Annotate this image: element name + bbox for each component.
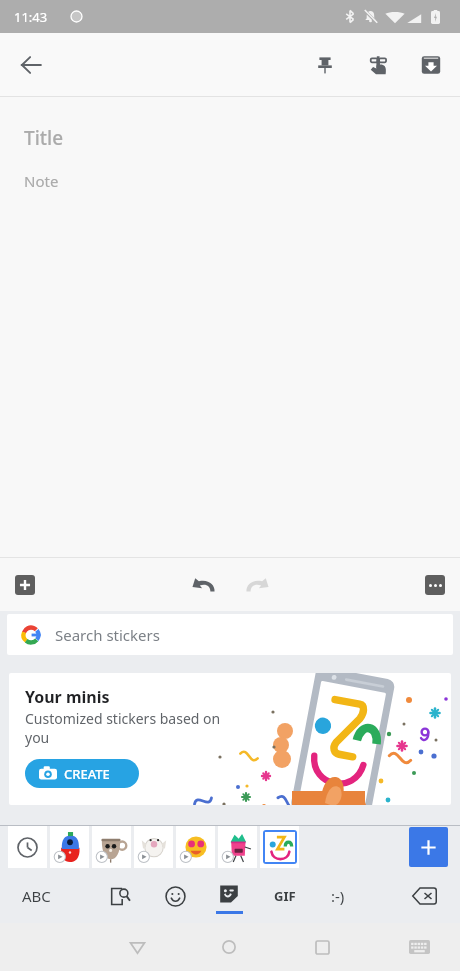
button[interactable]: Search stickers [7, 614, 453, 655]
staticText: :-) [331, 886, 345, 906]
button[interactable]: Home [205, 923, 253, 971]
staticText: ABC [22, 886, 51, 906]
staticText: Your minis [25, 686, 110, 708]
button[interactable]: Archive [409, 43, 453, 87]
button[interactable]: Back [9, 43, 53, 87]
button[interactable]: Your minis [9, 673, 451, 805]
button[interactable]: ABC [8, 874, 64, 918]
button[interactable]: Recent apps [298, 923, 346, 971]
staticText: 11:43 [14, 8, 48, 26]
button[interactable]: Recent stickers [8, 826, 47, 868]
button[interactable]: Add sticker pack [409, 827, 448, 867]
button[interactable]: Reminder [356, 43, 400, 87]
button[interactable]: Stickers [205, 874, 253, 918]
button[interactable]: Sticker pack [134, 826, 173, 868]
button[interactable]: Undo [181, 563, 225, 607]
button[interactable]: Emoji [151, 874, 199, 918]
button[interactable]: Redo [235, 563, 279, 607]
staticText: GIF [274, 887, 296, 905]
button[interactable]: Search stickers [96, 874, 144, 918]
button[interactable]: Backspace [400, 874, 448, 918]
staticText: Customized stickers based on you [25, 709, 221, 747]
button[interactable]: Keyboard [395, 923, 443, 971]
staticText: Note [24, 171, 59, 191]
button[interactable]: Sticker pack [176, 826, 215, 868]
button[interactable]: Sticker pack [218, 826, 257, 868]
button[interactable]: Back [113, 923, 161, 971]
button[interactable]: Add [6, 566, 44, 604]
staticText: Title [24, 125, 64, 151]
button[interactable]: CREATE [25, 759, 139, 788]
button[interactable]: Pin [303, 43, 347, 87]
button[interactable]: More options [416, 566, 454, 604]
staticText: CREATE [64, 765, 110, 783]
button[interactable]: GIF [261, 874, 309, 918]
button[interactable]: :-) [314, 874, 362, 918]
button[interactable]: Minis [260, 826, 299, 868]
staticText: Search stickers [55, 625, 160, 645]
button[interactable]: Sticker pack [92, 826, 131, 868]
button[interactable]: Sticker pack [50, 826, 89, 868]
